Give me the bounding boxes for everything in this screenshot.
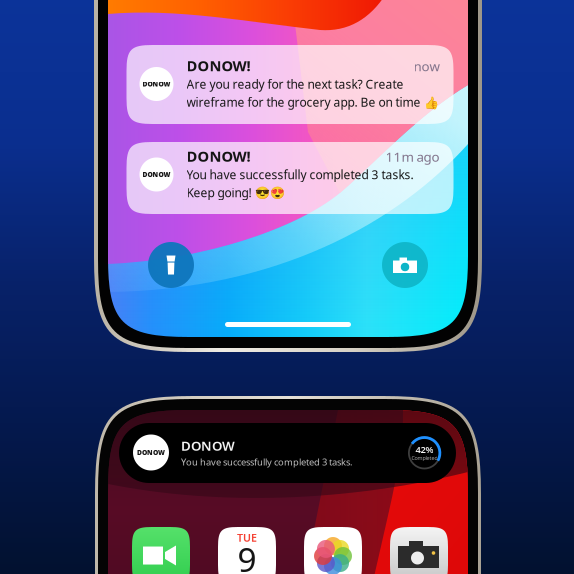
staticText: DONOW [181, 437, 235, 454]
staticText: 42% [415, 443, 433, 456]
staticText: You have successfully completed 3 tasks. [186, 166, 413, 182]
button[interactable]: DONOW [126, 138, 453, 217]
staticText: 9 [237, 537, 256, 574]
staticText: DONOW! [186, 146, 250, 166]
staticText: Are you ready for the next task? Create [186, 76, 403, 92]
staticText: TUE [237, 530, 257, 545]
staticText: Keep going! 😎😍 [186, 184, 284, 200]
staticText: DONOW [142, 170, 170, 179]
staticText: 11m ago [385, 148, 439, 165]
staticText: DONOW [137, 448, 165, 457]
button[interactable]: FaceTime [132, 527, 190, 574]
button[interactable]: DONOW live activity [119, 423, 456, 483]
staticText: Completed [411, 454, 437, 462]
staticText: DONOW! [186, 56, 250, 75]
button[interactable]: Calendar [218, 527, 276, 574]
button[interactable]: Camera [390, 527, 448, 574]
staticText: wireframe for the grocery app. Be on tim… [186, 94, 438, 110]
staticText: DONOW [142, 80, 170, 88]
button[interactable]: DONOW [126, 45, 453, 124]
staticText: You have successfully completed 3 tasks. [181, 456, 353, 468]
staticText: now [413, 57, 439, 75]
button[interactable]: Photos [304, 527, 362, 574]
button[interactable]: Camera [382, 242, 428, 288]
button[interactable]: Flashlight [148, 242, 194, 288]
